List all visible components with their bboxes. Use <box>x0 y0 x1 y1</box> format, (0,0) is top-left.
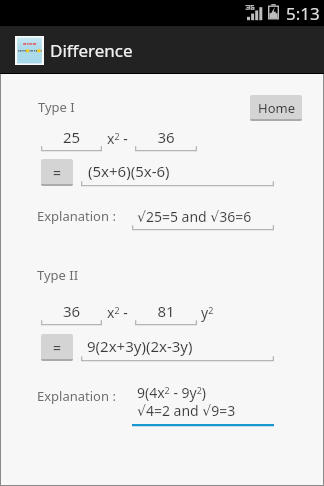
staticText: = <box>53 163 62 182</box>
staticText: 5:13 <box>286 2 320 25</box>
button[interactable]: 9(4x2 - 9y2) √4=2 and √9=3 <box>137 383 272 420</box>
button[interactable]: 36 <box>41 301 102 321</box>
staticText: x2 - <box>107 129 128 148</box>
staticText: Type I <box>38 98 75 116</box>
button[interactable]: 36 <box>135 127 197 147</box>
button[interactable]: Home <box>250 95 302 121</box>
button[interactable]: √25=5 and √36=6 <box>137 207 272 226</box>
staticText: Difference <box>50 39 133 62</box>
staticText: Explanation : <box>37 387 116 405</box>
button[interactable]: 9(2x+3y)(2x-3y) <box>87 336 272 356</box>
staticText: = <box>53 338 62 357</box>
button[interactable]: 81 <box>135 301 197 321</box>
button[interactable]: (5x+6)(5x-6) <box>88 161 273 181</box>
staticText: x2 - <box>107 303 128 322</box>
staticText: Type II <box>37 266 79 284</box>
button[interactable]: Equals <box>41 334 73 361</box>
staticText: y2 <box>201 303 214 322</box>
staticText: Home <box>258 99 295 117</box>
staticText: Explanation : <box>37 207 116 225</box>
button[interactable]: 25 <box>41 127 102 147</box>
button[interactable]: Equals <box>41 159 73 186</box>
